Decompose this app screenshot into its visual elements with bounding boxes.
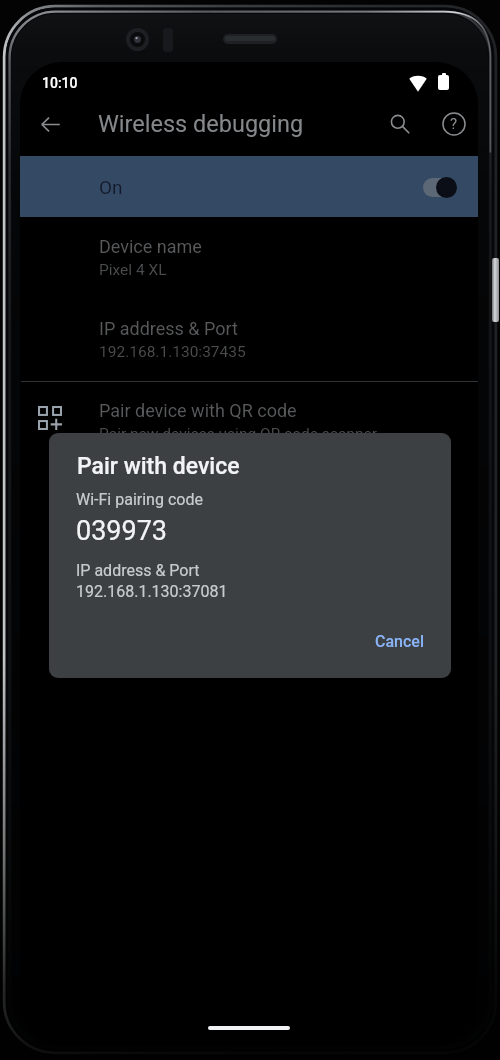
button[interactable]: Help xyxy=(437,107,471,141)
staticText: Pair with device xyxy=(77,453,240,480)
staticText: Cancel xyxy=(375,632,424,651)
staticText: Pair new devices using QR code scanner xyxy=(99,425,377,443)
button[interactable]: Back xyxy=(33,107,67,141)
staticText: IP address & Port xyxy=(99,318,238,339)
button[interactable]: Device name xyxy=(20,217,478,299)
staticText: Pair device with QR code xyxy=(99,400,297,421)
button[interactable]: Search xyxy=(383,107,417,141)
button[interactable]: Pair device with QR code xyxy=(20,382,478,468)
button[interactable]: IP address & Port xyxy=(20,299,478,381)
staticText: Wireless debugging xyxy=(98,110,304,138)
staticText: On xyxy=(99,176,123,198)
staticText: 192.168.1.130:37081 xyxy=(76,582,228,601)
staticText: Pixel 4 XL xyxy=(99,261,167,279)
staticText: IP address & Port xyxy=(76,561,200,580)
button[interactable]: Cancel xyxy=(367,626,432,657)
staticText: ? xyxy=(450,115,458,133)
button[interactable]: On xyxy=(20,156,478,217)
staticText: 10:10 xyxy=(42,75,78,91)
staticText: Wi-Fi pairing code xyxy=(76,490,203,509)
staticText: 039973 xyxy=(76,515,168,547)
staticText: Device name xyxy=(99,236,202,257)
staticText: 192.168.1.130:37435 xyxy=(99,343,246,361)
